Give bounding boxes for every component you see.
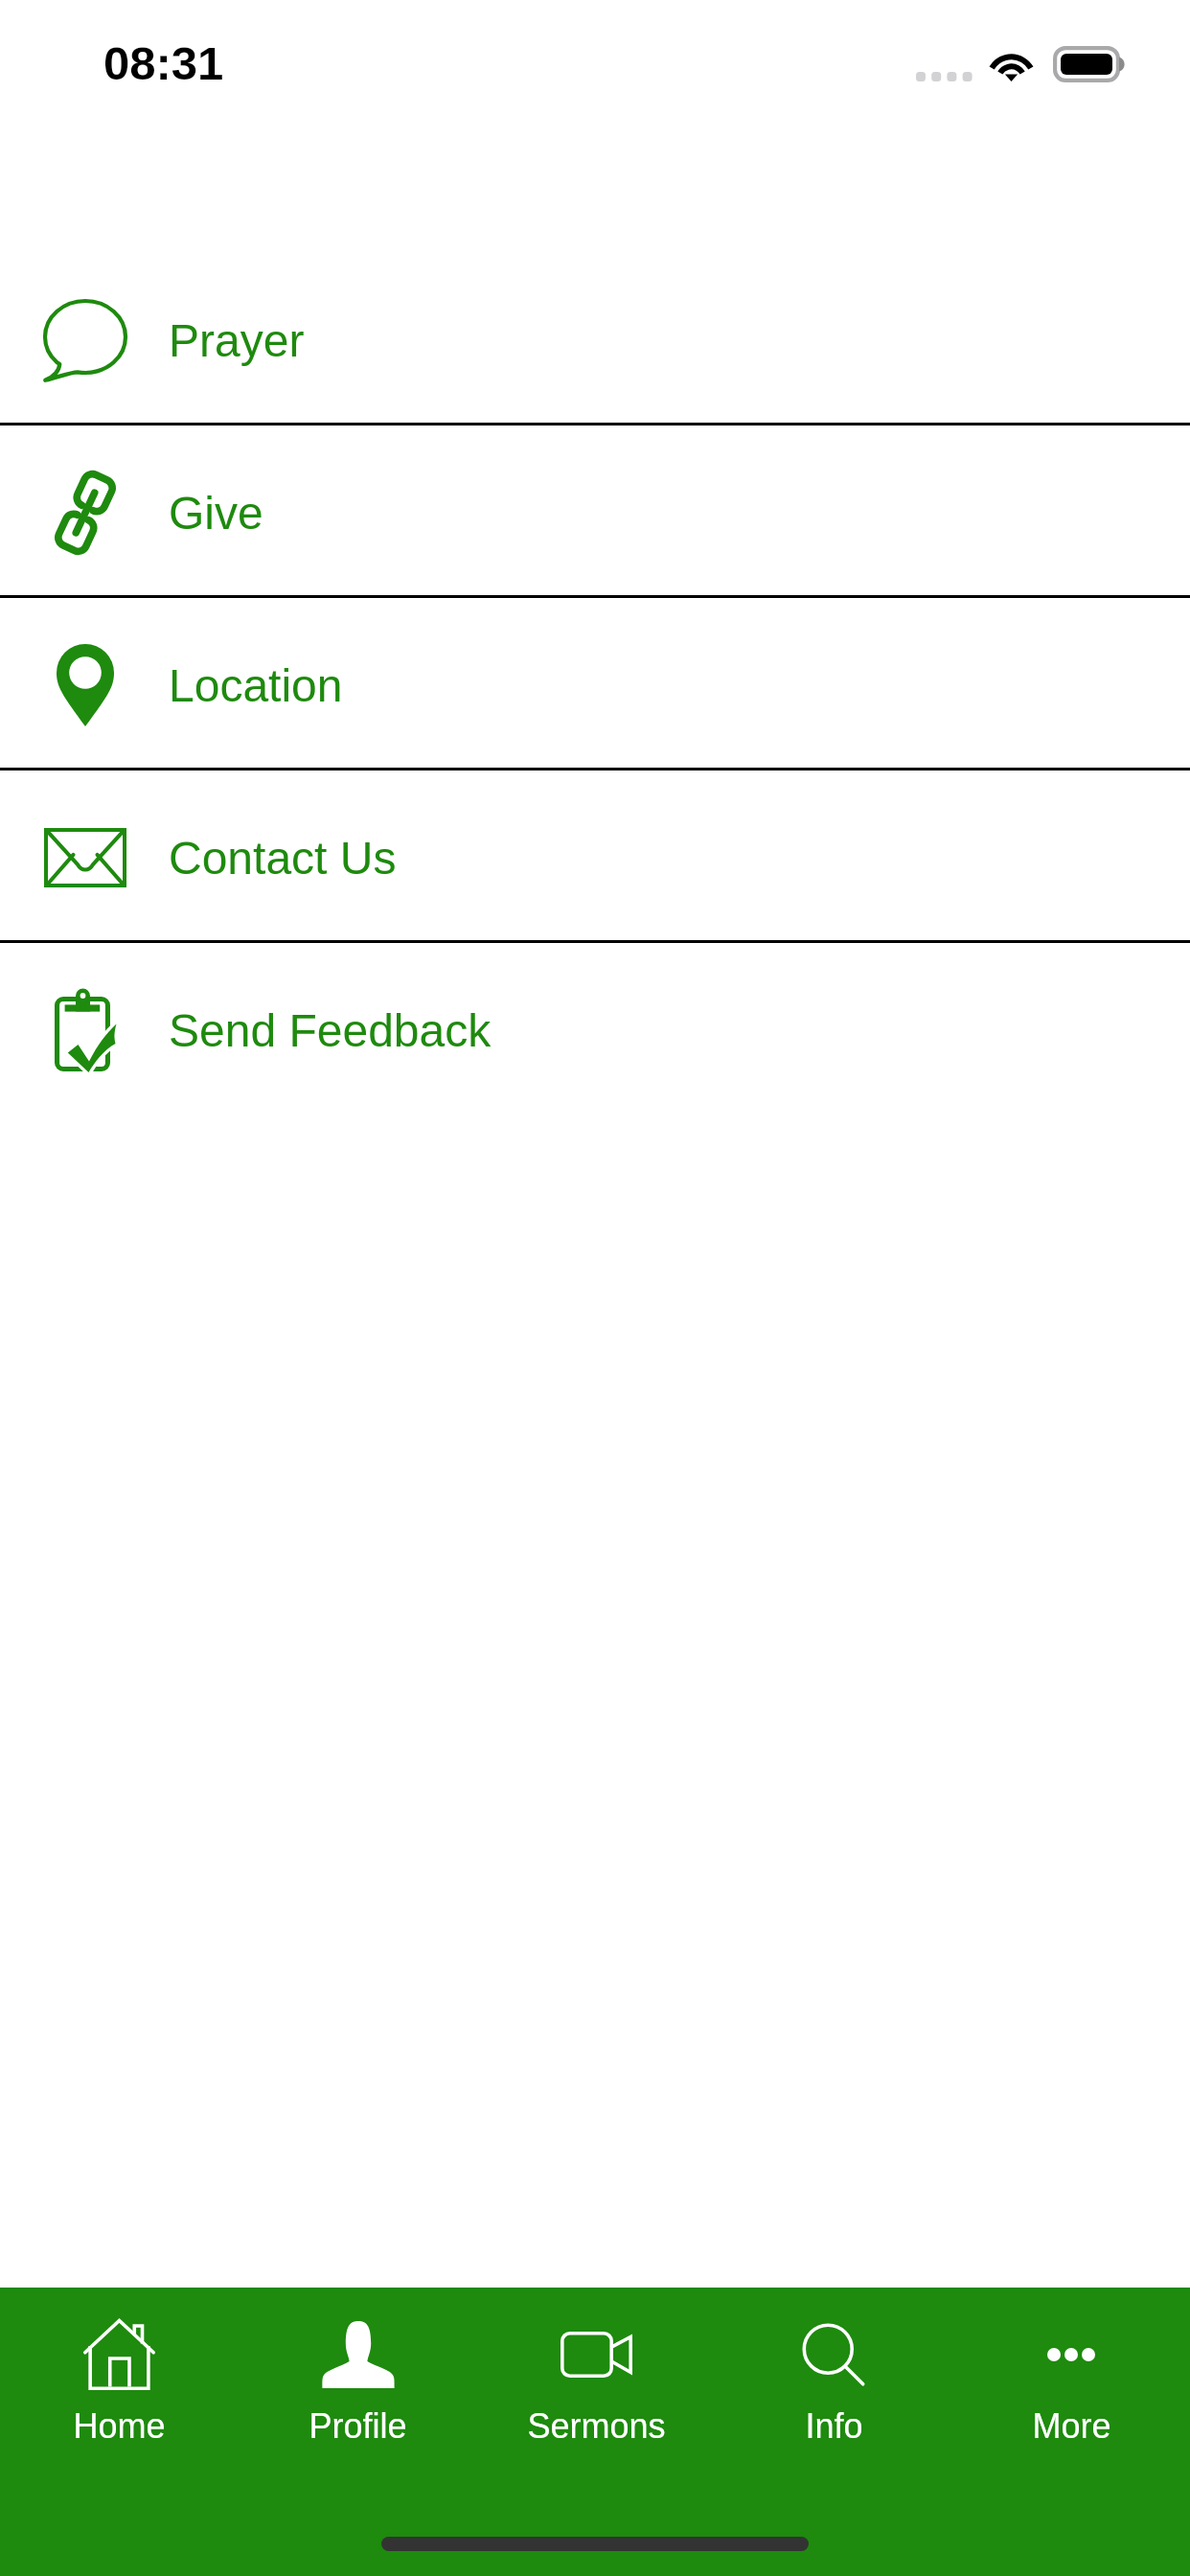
staticText: Sermons: [527, 2406, 666, 2445]
button[interactable]: Give: [0, 425, 1190, 595]
staticText: Send Feedback: [169, 1005, 492, 1057]
staticText: More: [1032, 2406, 1111, 2445]
staticText: 08:31: [103, 37, 224, 90]
button[interactable]: Info: [715, 2288, 952, 2460]
button[interactable]: Prayer: [0, 253, 1190, 423]
staticText: Info: [805, 2406, 863, 2445]
staticText: Location: [169, 660, 343, 712]
button[interactable]: Contact Us: [0, 770, 1190, 940]
button[interactable]: Sermons: [477, 2288, 715, 2460]
staticText: Prayer: [169, 315, 305, 367]
staticText: Home: [73, 2406, 166, 2445]
staticText: Contact Us: [169, 833, 397, 885]
button[interactable]: Location: [0, 598, 1190, 768]
button[interactable]: Send Feedback: [0, 943, 1190, 1113]
staticText: Give: [169, 488, 263, 540]
button[interactable]: Home: [0, 2288, 239, 2460]
button[interactable]: Profile: [239, 2288, 477, 2460]
staticText: Profile: [309, 2406, 407, 2445]
button[interactable]: More: [952, 2288, 1190, 2460]
